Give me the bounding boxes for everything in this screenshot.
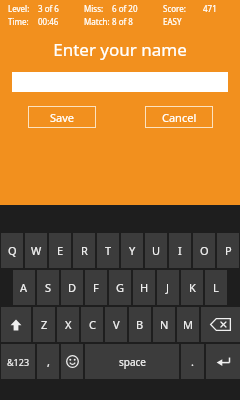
button[interactable]: Enter — [206, 344, 240, 379]
staticText: J — [166, 280, 170, 295]
button[interactable]: V — [105, 307, 127, 342]
staticText: Score: — [163, 3, 186, 14]
button[interactable]: O — [193, 233, 215, 268]
staticText: H — [140, 280, 149, 295]
button[interactable]: Backspace — [201, 307, 240, 342]
staticText: R — [81, 243, 88, 258]
staticText: A — [20, 280, 28, 295]
staticText: V — [113, 317, 120, 332]
button[interactable]: B — [129, 307, 151, 342]
staticText: T — [105, 243, 112, 258]
staticText: B — [136, 317, 144, 332]
button[interactable]: K — [181, 270, 203, 305]
button[interactable]: Save — [28, 106, 96, 128]
button[interactable]: space — [85, 344, 179, 379]
staticText: Miss: — [84, 3, 104, 14]
button[interactable]: Z — [33, 307, 55, 342]
staticText: I — [178, 243, 182, 258]
staticText: U — [152, 243, 161, 258]
staticText: 471 — [203, 3, 217, 14]
staticText: Level: — [8, 3, 30, 14]
staticText: Q — [8, 243, 17, 258]
button[interactable]: D — [61, 270, 83, 305]
button[interactable]: Q — [1, 233, 23, 268]
staticText: 00:46 — [38, 16, 59, 27]
button[interactable]: I — [169, 233, 191, 268]
button[interactable]: Cancel — [145, 106, 213, 128]
button[interactable]: C — [81, 307, 103, 342]
staticText: 3 of 6 — [38, 3, 59, 14]
button[interactable]: S — [37, 270, 59, 305]
staticText: EASY — [163, 16, 182, 27]
staticText: 6 of 20 — [112, 3, 138, 14]
button[interactable]: T — [97, 233, 119, 268]
staticText: Save — [50, 110, 75, 125]
staticText: C — [89, 317, 96, 332]
staticText: 8 of 8 — [112, 16, 133, 27]
button[interactable]: &123 — [1, 344, 35, 379]
staticText: &123 — [7, 356, 30, 368]
staticText: Match: — [84, 16, 110, 27]
button[interactable]: P — [217, 233, 239, 268]
button[interactable]: W — [25, 233, 47, 268]
button[interactable]: M — [177, 307, 199, 342]
button[interactable]: H — [133, 270, 155, 305]
staticText: W — [31, 243, 42, 258]
button[interactable]: F — [85, 270, 107, 305]
staticText: Enter your name — [0, 38, 240, 61]
staticText: N — [160, 317, 169, 332]
staticText: space — [119, 355, 146, 369]
button[interactable]: G — [109, 270, 131, 305]
staticText: E — [57, 243, 64, 258]
staticText: X — [65, 317, 72, 332]
staticText: L — [213, 280, 219, 295]
staticText: Y — [129, 243, 136, 258]
button[interactable]: A — [13, 270, 35, 305]
button[interactable]: U — [145, 233, 167, 268]
button[interactable]: . — [181, 344, 204, 379]
staticText: D — [68, 280, 77, 295]
staticText: M — [183, 317, 193, 332]
button[interactable]: , — [37, 344, 59, 379]
staticText: Time: — [8, 16, 29, 27]
staticText: , — [47, 354, 50, 369]
button[interactable]: E — [49, 233, 71, 268]
staticText: . — [191, 354, 194, 369]
button[interactable]: J — [157, 270, 179, 305]
staticText: G — [116, 280, 125, 295]
staticText: P — [225, 243, 232, 258]
button[interactable]: Shift — [1, 307, 31, 342]
button[interactable]: Y — [121, 233, 143, 268]
staticText: Cancel — [162, 110, 197, 125]
button[interactable]: Emoji — [61, 344, 83, 379]
button[interactable]: R — [73, 233, 95, 268]
staticText: F — [93, 280, 99, 295]
staticText: Z — [41, 317, 48, 332]
button[interactable]: L — [205, 270, 227, 305]
staticText: O — [200, 243, 209, 258]
staticText: S — [45, 280, 52, 295]
button[interactable]: X — [57, 307, 79, 342]
button[interactable]: N — [153, 307, 175, 342]
staticText: K — [189, 280, 196, 295]
